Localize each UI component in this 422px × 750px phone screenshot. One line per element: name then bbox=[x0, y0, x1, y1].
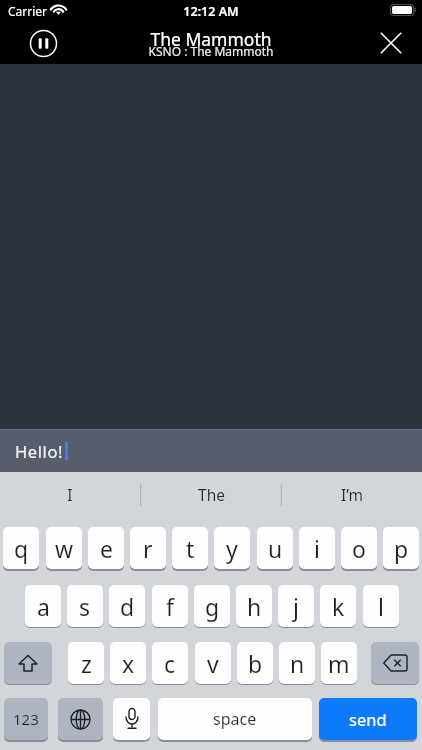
staticText: I bbox=[67, 484, 73, 505]
staticText: I’m bbox=[341, 484, 363, 505]
button[interactable]: j bbox=[278, 585, 314, 627]
button[interactable]: o bbox=[341, 527, 377, 569]
button[interactable]: r bbox=[130, 527, 166, 569]
staticText: o bbox=[352, 533, 366, 564]
staticText: The bbox=[198, 484, 225, 505]
button[interactable]: n bbox=[279, 642, 315, 684]
button[interactable]: p bbox=[383, 527, 419, 569]
staticText: l bbox=[378, 591, 384, 622]
staticText: d bbox=[120, 591, 135, 622]
staticText: i bbox=[314, 533, 320, 564]
staticText: j bbox=[293, 591, 299, 622]
staticText: send bbox=[349, 708, 387, 730]
button[interactable]: a bbox=[25, 585, 61, 627]
button[interactable] bbox=[58, 698, 103, 740]
staticText: y bbox=[226, 533, 238, 564]
button[interactable]: s bbox=[67, 585, 103, 627]
button[interactable]: d bbox=[109, 585, 145, 627]
button[interactable]: The bbox=[141, 472, 281, 516]
button[interactable]: k bbox=[320, 585, 356, 627]
button[interactable]: t bbox=[172, 527, 208, 569]
button[interactable]: g bbox=[194, 585, 230, 627]
staticText: m bbox=[328, 648, 350, 679]
button[interactable]: send bbox=[319, 698, 417, 740]
button[interactable]: 123 bbox=[4, 698, 48, 740]
staticText: t bbox=[186, 533, 195, 564]
staticText: c bbox=[164, 648, 176, 679]
staticText: q bbox=[14, 533, 29, 564]
button[interactable]: x bbox=[110, 642, 146, 684]
staticText: v bbox=[207, 648, 219, 679]
staticText: f bbox=[166, 591, 174, 622]
staticText: x bbox=[122, 648, 135, 679]
staticText: The Mammoth bbox=[0, 27, 422, 51]
button[interactable]: y bbox=[214, 527, 250, 569]
button[interactable]: h bbox=[236, 585, 272, 627]
staticText: u bbox=[268, 533, 283, 564]
button[interactable]: space bbox=[158, 698, 312, 740]
button[interactable]: z bbox=[68, 642, 104, 684]
button[interactable] bbox=[113, 698, 150, 740]
button[interactable]: I’m bbox=[282, 472, 422, 516]
button[interactable]: q bbox=[3, 527, 39, 569]
staticText: a bbox=[37, 591, 50, 622]
staticText: r bbox=[143, 533, 153, 564]
button[interactable] bbox=[376, 28, 406, 58]
staticText: b bbox=[248, 648, 263, 679]
staticText: Hello! bbox=[15, 440, 64, 462]
button[interactable]: v bbox=[195, 642, 231, 684]
button[interactable]: f bbox=[152, 585, 188, 627]
button[interactable]: b bbox=[237, 642, 273, 684]
button[interactable]: Hello! bbox=[0, 429, 422, 472]
button[interactable] bbox=[29, 29, 58, 58]
staticText: p bbox=[394, 533, 409, 564]
button[interactable]: u bbox=[257, 527, 293, 569]
staticText: 12:12 AM bbox=[0, 3, 422, 20]
button[interactable] bbox=[4, 642, 52, 684]
button[interactable] bbox=[371, 642, 419, 684]
staticText: k bbox=[332, 591, 345, 622]
staticText: s bbox=[79, 591, 91, 622]
staticText: e bbox=[100, 533, 113, 564]
staticText: Carrier bbox=[8, 3, 48, 19]
button[interactable]: i bbox=[299, 527, 335, 569]
button[interactable]: c bbox=[152, 642, 188, 684]
staticText: w bbox=[55, 533, 74, 564]
staticText: h bbox=[247, 591, 262, 622]
staticText: g bbox=[205, 591, 220, 622]
button[interactable]: e bbox=[88, 527, 124, 569]
staticText: n bbox=[290, 648, 305, 679]
staticText: 123 bbox=[13, 709, 39, 729]
staticText: z bbox=[81, 648, 92, 679]
staticText: space bbox=[213, 708, 257, 730]
staticText: KSNO : The Mammoth bbox=[0, 43, 422, 59]
button[interactable]: I bbox=[0, 472, 140, 516]
button[interactable]: w bbox=[46, 527, 82, 569]
button[interactable]: l bbox=[363, 585, 399, 627]
button[interactable]: m bbox=[321, 642, 357, 684]
